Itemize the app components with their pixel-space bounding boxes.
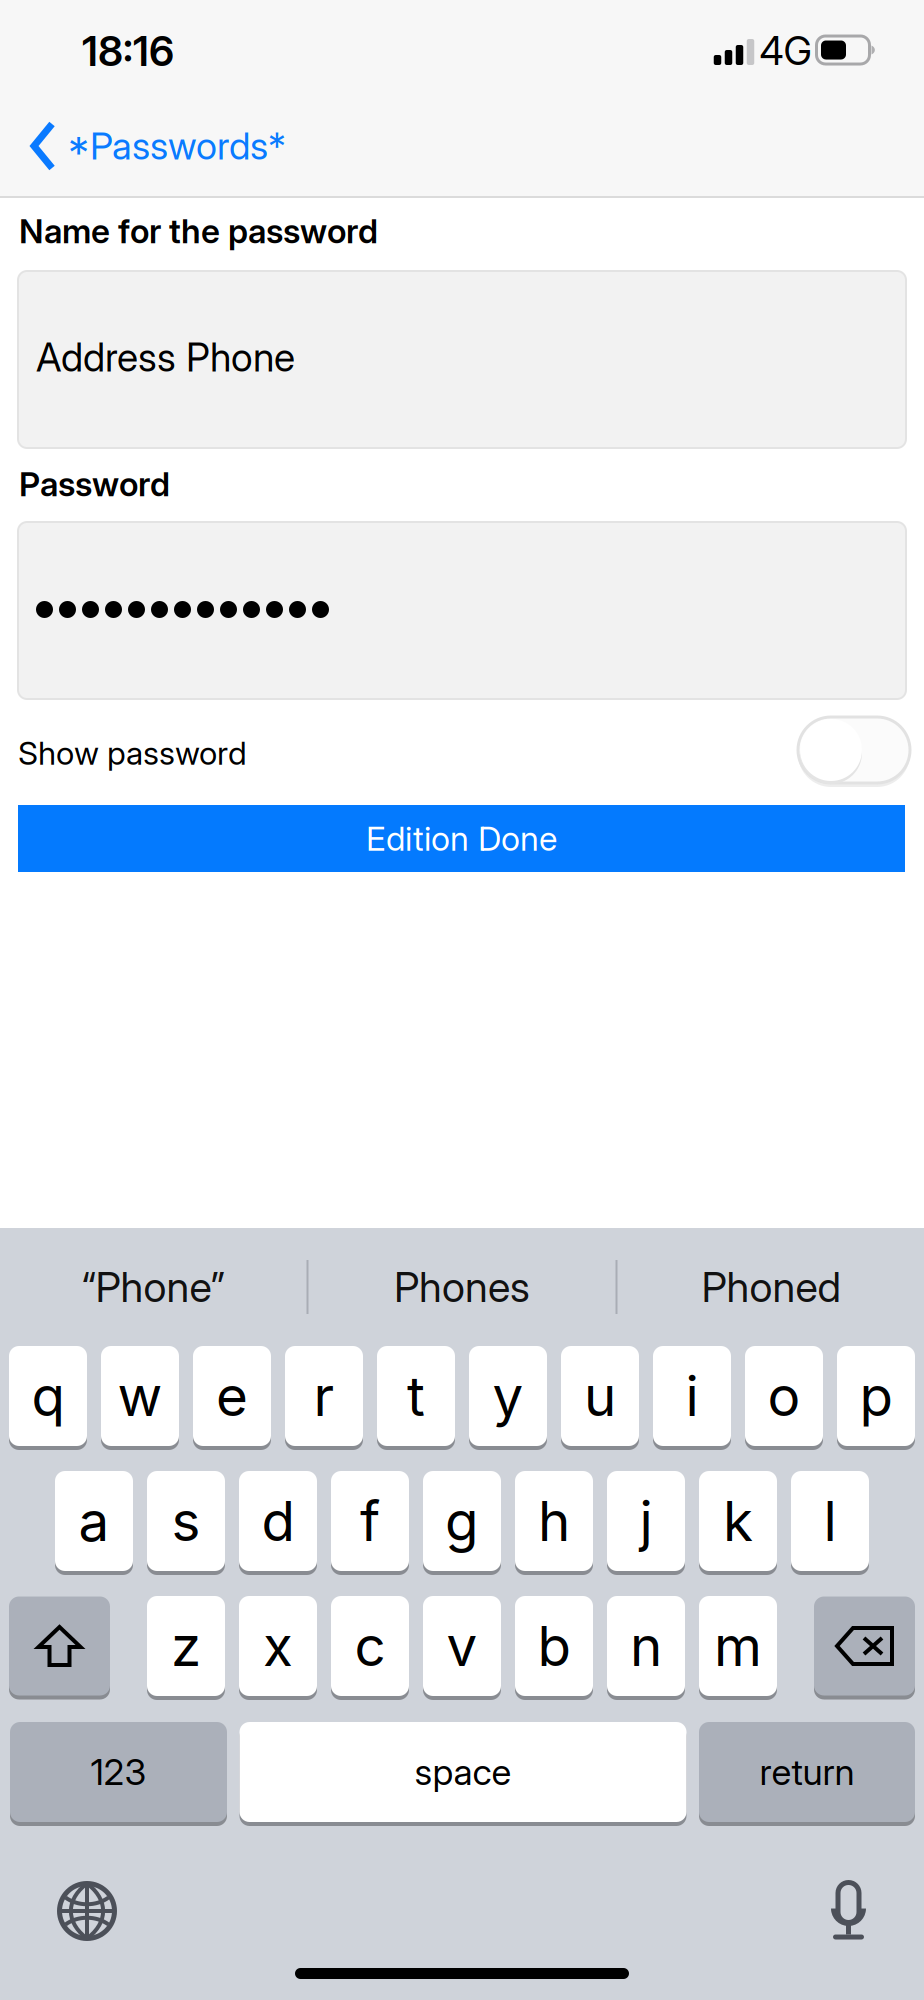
- button[interactable]: r: [285, 1346, 363, 1450]
- button[interactable]: n: [607, 1596, 685, 1700]
- staticText: b: [537, 1613, 570, 1679]
- staticText: p: [859, 1363, 892, 1429]
- button[interactable]: Show password: [798, 717, 924, 789]
- button[interactable]: Shift: [9, 1596, 110, 1699]
- button[interactable]: x: [239, 1596, 317, 1700]
- staticText: “Phone”: [81, 1262, 224, 1312]
- staticText: d: [261, 1488, 294, 1554]
- button[interactable]: m: [699, 1596, 777, 1700]
- staticText: 4G: [759, 28, 811, 74]
- button[interactable]: w: [101, 1346, 179, 1450]
- staticText: Phoned: [701, 1262, 840, 1312]
- staticText: h: [538, 1488, 570, 1554]
- staticText: 18:16: [82, 26, 174, 76]
- button[interactable]: d: [239, 1471, 317, 1575]
- staticText: z: [171, 1613, 201, 1679]
- staticText: s: [171, 1488, 200, 1554]
- staticText: Address Phone: [36, 334, 295, 381]
- staticText: g: [445, 1488, 479, 1554]
- button[interactable]: Edition Done: [18, 805, 905, 872]
- staticText: e: [216, 1363, 248, 1429]
- button[interactable]: h: [515, 1471, 593, 1575]
- button[interactable]: l: [791, 1471, 869, 1575]
- button[interactable]: *Passwords*: [0, 96, 304, 196]
- staticText: *Passwords*: [67, 123, 286, 169]
- staticText: Edition Done: [366, 818, 557, 859]
- button[interactable]: Next keyboard: [58, 1882, 116, 1940]
- button[interactable]: s: [147, 1471, 225, 1575]
- staticText: v: [446, 1613, 477, 1679]
- button[interactable]: q: [9, 1346, 87, 1450]
- staticText: Name for the password: [19, 211, 378, 251]
- staticText: a: [78, 1488, 109, 1554]
- staticText: t: [407, 1363, 425, 1429]
- button[interactable]: 123: [10, 1722, 227, 1826]
- staticText: u: [584, 1363, 616, 1429]
- button[interactable]: u: [561, 1346, 639, 1450]
- staticText: y: [492, 1363, 523, 1429]
- staticText: f: [360, 1488, 380, 1554]
- staticText: i: [685, 1363, 698, 1429]
- button[interactable]: v: [423, 1596, 501, 1700]
- staticText: q: [31, 1363, 64, 1429]
- staticText: o: [767, 1363, 800, 1429]
- staticText: return: [759, 1750, 854, 1794]
- button[interactable]: z: [147, 1596, 225, 1700]
- button[interactable]: t: [377, 1346, 455, 1450]
- staticText: Show password: [18, 734, 247, 772]
- button[interactable]: k: [699, 1471, 777, 1575]
- button[interactable]: a: [55, 1471, 133, 1575]
- button[interactable]: return: [699, 1722, 915, 1826]
- staticText: space: [414, 1750, 511, 1794]
- button[interactable]: p: [837, 1346, 915, 1450]
- staticText: c: [354, 1613, 385, 1679]
- button[interactable]: o: [745, 1346, 823, 1450]
- button[interactable]: Delete: [814, 1596, 915, 1699]
- button[interactable]: y: [469, 1346, 547, 1450]
- button[interactable]: b: [515, 1596, 593, 1700]
- staticText: k: [723, 1488, 753, 1554]
- button[interactable]: i: [653, 1346, 731, 1450]
- staticText: x: [263, 1613, 293, 1679]
- button[interactable]: c: [331, 1596, 409, 1700]
- button[interactable]: Dictate: [831, 1882, 866, 1939]
- button[interactable]: j: [607, 1471, 685, 1575]
- staticText: r: [313, 1363, 334, 1429]
- staticText: m: [714, 1613, 762, 1679]
- staticText: l: [823, 1488, 836, 1554]
- button[interactable]: g: [423, 1471, 501, 1575]
- button[interactable]: f: [331, 1471, 409, 1575]
- button[interactable]: space: [239, 1722, 686, 1826]
- staticText: Password: [19, 464, 170, 504]
- staticText: n: [630, 1613, 662, 1679]
- staticText: j: [639, 1488, 652, 1554]
- staticText: w: [117, 1363, 162, 1429]
- button[interactable]: e: [193, 1346, 271, 1450]
- staticText: 123: [90, 1750, 146, 1794]
- staticText: Phones: [394, 1262, 530, 1312]
